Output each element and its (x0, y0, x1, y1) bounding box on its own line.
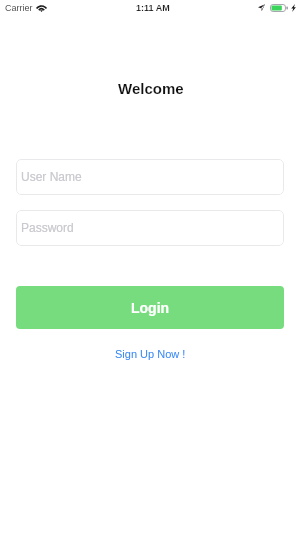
staticText: 1:11 AM (136, 3, 170, 13)
button[interactable]: Login (16, 286, 284, 329)
other: Wi-Fi (37, 5, 46, 12)
button[interactable]: Password (16, 210, 284, 246)
other: Battery (270, 4, 288, 12)
other: Location (258, 4, 265, 11)
other: Charging (291, 4, 296, 12)
staticText: Login (131, 300, 170, 316)
button[interactable]: Sign Up Now ! (107, 344, 194, 364)
staticText: User Name (21, 170, 82, 183)
staticText: Carrier (5, 3, 33, 13)
staticText: Sign Up Now ! (115, 348, 186, 360)
staticText: Welcome (118, 80, 184, 97)
staticText: Password (21, 221, 74, 234)
button[interactable]: User Name (16, 159, 284, 195)
